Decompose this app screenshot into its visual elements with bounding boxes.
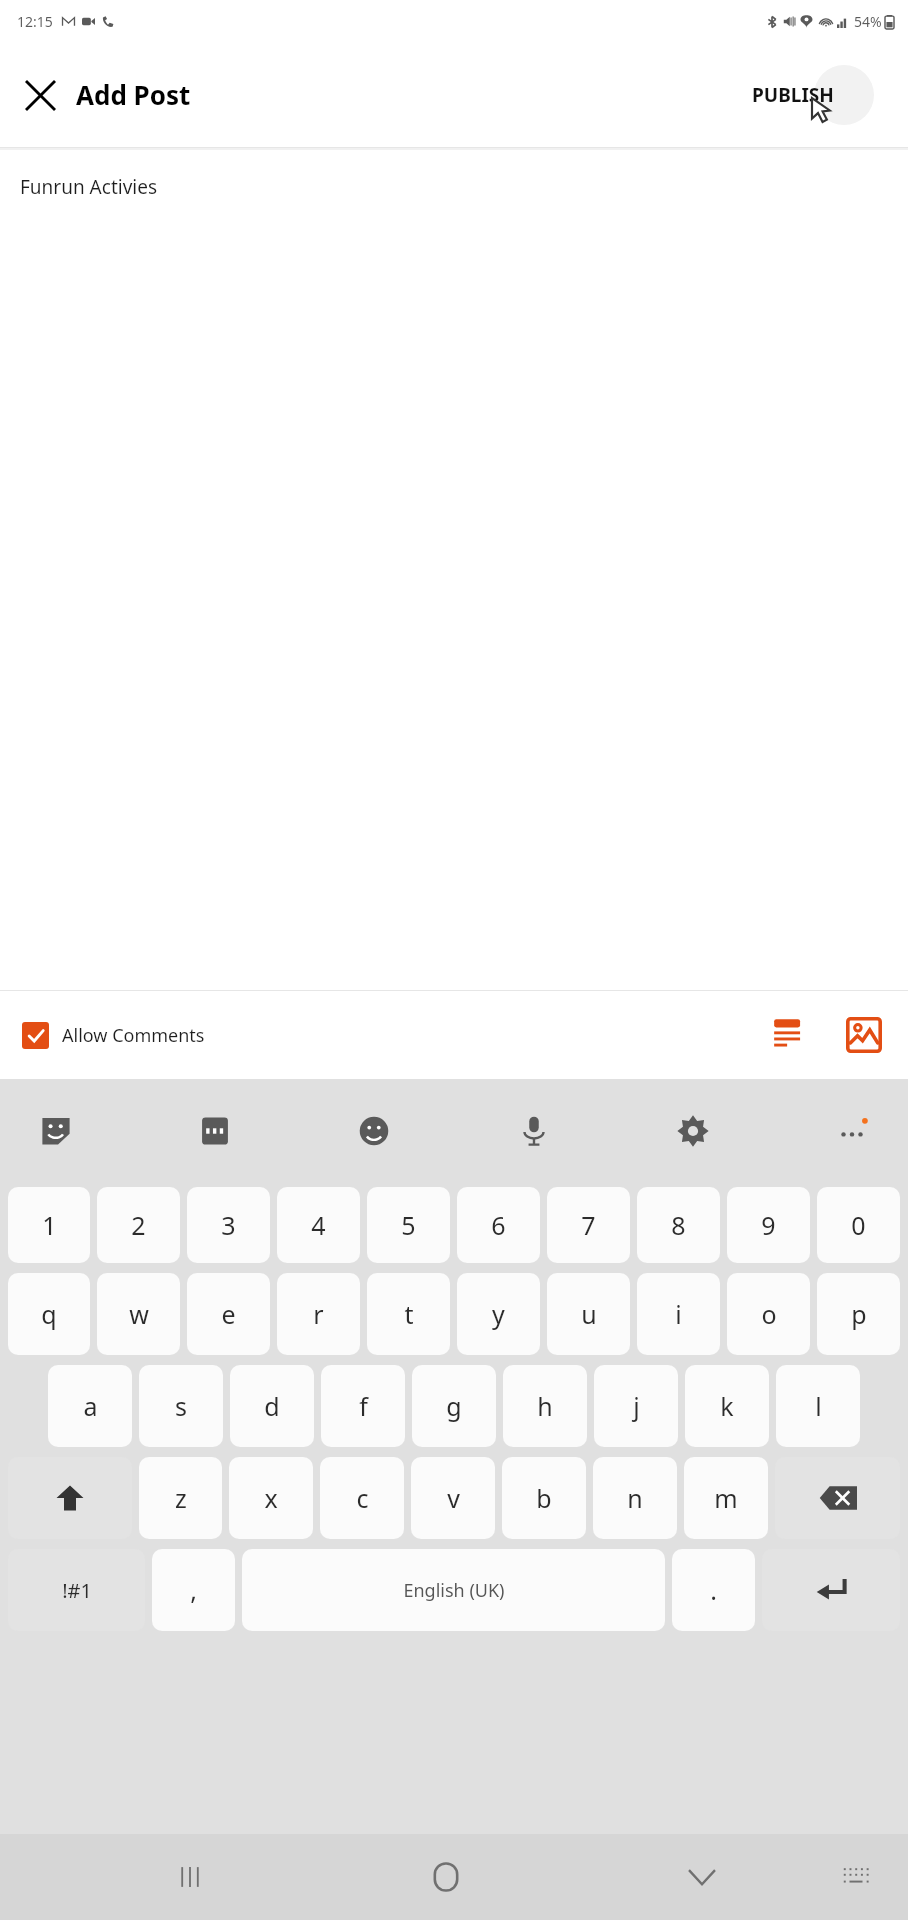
- staticText: o: [761, 1297, 777, 1331]
- staticText: k: [720, 1389, 734, 1423]
- button[interactable]: Stickers: [30, 1105, 82, 1157]
- button[interactable]: Emoji: [348, 1105, 400, 1157]
- button[interactable]: Hide keyboard: [672, 1847, 732, 1907]
- button[interactable]: Close: [14, 69, 66, 121]
- button[interactable]: Funrun Activies: [0, 150, 908, 990]
- staticText: j: [633, 1389, 640, 1423]
- staticText: z: [175, 1481, 187, 1515]
- staticText: 12:15: [17, 12, 53, 31]
- staticText: n: [627, 1481, 643, 1515]
- button[interactable]: English (UK): [242, 1549, 665, 1631]
- button[interactable]: Shift: [8, 1457, 132, 1539]
- button[interactable]: m: [684, 1457, 768, 1539]
- button[interactable]: d: [230, 1365, 314, 1447]
- button[interactable]: !#1: [8, 1549, 145, 1631]
- button[interactable]: g: [412, 1365, 496, 1447]
- button[interactable]: .: [672, 1549, 755, 1631]
- staticText: m: [714, 1481, 738, 1515]
- button[interactable]: 1: [8, 1187, 90, 1263]
- button[interactable]: w: [97, 1273, 180, 1355]
- button[interactable]: s: [139, 1365, 223, 1447]
- staticText: ,: [190, 1573, 197, 1607]
- staticText: 0: [851, 1208, 866, 1242]
- staticText: u: [581, 1297, 597, 1331]
- staticText: a: [83, 1389, 98, 1423]
- button[interactable]: j: [594, 1365, 678, 1447]
- button[interactable]: i: [637, 1273, 720, 1355]
- button[interactable]: e: [187, 1273, 270, 1355]
- button[interactable]: GIF: [189, 1105, 241, 1157]
- button[interactable]: Add image: [838, 1009, 890, 1061]
- staticText: w: [129, 1297, 149, 1331]
- staticText: x: [264, 1481, 278, 1515]
- button[interactable]: f: [321, 1365, 405, 1447]
- staticText: 7: [581, 1208, 596, 1242]
- button[interactable]: Backspace: [775, 1457, 900, 1539]
- button[interactable]: 9: [727, 1187, 810, 1263]
- button[interactable]: a: [48, 1365, 132, 1447]
- staticText: 4: [311, 1208, 326, 1242]
- button[interactable]: PUBLISH: [738, 70, 848, 120]
- staticText: l: [815, 1389, 822, 1423]
- button[interactable]: r: [277, 1273, 360, 1355]
- button[interactable]: 7: [547, 1187, 630, 1263]
- button[interactable]: q: [8, 1273, 90, 1355]
- button[interactable]: t: [367, 1273, 450, 1355]
- staticText: b: [536, 1481, 552, 1515]
- button[interactable]: x: [229, 1457, 313, 1539]
- staticText: !#1: [62, 1577, 92, 1604]
- button[interactable]: l: [776, 1365, 860, 1447]
- staticText: h: [537, 1389, 553, 1423]
- staticText: c: [356, 1481, 369, 1515]
- button[interactable]: Add text block: [764, 1009, 816, 1061]
- staticText: g: [446, 1389, 462, 1423]
- button[interactable]: 0: [817, 1187, 900, 1263]
- button[interactable]: 6: [457, 1187, 540, 1263]
- staticText: 3: [221, 1208, 236, 1242]
- button[interactable]: k: [685, 1365, 769, 1447]
- button[interactable]: Enter: [762, 1549, 900, 1631]
- staticText: 9: [761, 1208, 776, 1242]
- staticText: Add Post: [76, 77, 191, 112]
- staticText: p: [851, 1297, 867, 1331]
- button[interactable]: b: [502, 1457, 586, 1539]
- button[interactable]: v: [411, 1457, 495, 1539]
- staticText: d: [264, 1389, 280, 1423]
- button[interactable]: 8: [637, 1187, 720, 1263]
- staticText: 1: [42, 1208, 57, 1242]
- staticText: 8: [671, 1208, 686, 1242]
- button[interactable]: 4: [277, 1187, 360, 1263]
- staticText: e: [221, 1297, 236, 1331]
- button[interactable]: Home: [416, 1847, 476, 1907]
- staticText: y: [492, 1297, 505, 1331]
- button[interactable]: 2: [97, 1187, 180, 1263]
- button[interactable]: 3: [187, 1187, 270, 1263]
- button[interactable]: ,: [152, 1549, 235, 1631]
- button[interactable]: c: [320, 1457, 404, 1539]
- button[interactable]: o: [727, 1273, 810, 1355]
- button[interactable]: u: [547, 1273, 630, 1355]
- button[interactable]: z: [139, 1457, 222, 1539]
- button[interactable]: Voice input: [508, 1105, 560, 1157]
- button[interactable]: n: [593, 1457, 677, 1539]
- staticText: s: [175, 1389, 187, 1423]
- staticText: 54%: [854, 12, 882, 31]
- button[interactable]: More options: [826, 1105, 878, 1157]
- staticText: Allow Comments: [62, 1023, 205, 1048]
- staticText: i: [675, 1297, 682, 1331]
- staticText: 5: [401, 1208, 416, 1242]
- staticText: r: [313, 1297, 324, 1331]
- button[interactable]: 5: [367, 1187, 450, 1263]
- staticText: q: [41, 1297, 57, 1331]
- button[interactable]: Keyboard settings: [667, 1105, 719, 1157]
- staticText: 6: [491, 1208, 506, 1242]
- button[interactable]: Allow Comments: [18, 1016, 209, 1055]
- button[interactable]: Recents: [160, 1847, 220, 1907]
- button[interactable]: p: [817, 1273, 900, 1355]
- button[interactable]: Change keyboard: [826, 1847, 886, 1907]
- button[interactable]: h: [503, 1365, 587, 1447]
- staticText: English (UK): [403, 1578, 505, 1603]
- button[interactable]: y: [457, 1273, 540, 1355]
- staticText: t: [404, 1297, 414, 1331]
- staticText: PUBLISH: [752, 82, 834, 108]
